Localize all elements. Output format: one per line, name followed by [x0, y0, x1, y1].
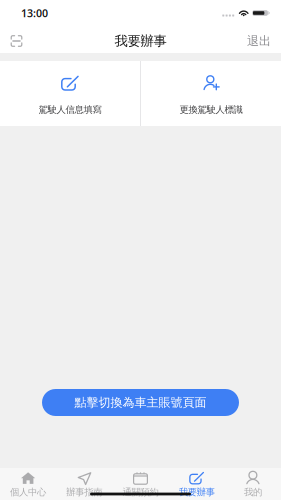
staticText: 更換駕駛人標識	[179, 104, 242, 115]
button[interactable]: 我的	[225, 468, 281, 498]
button[interactable]: 辦事指南	[56, 468, 112, 498]
staticText: 駕駛人信息填寫	[38, 104, 101, 115]
staticText: 辦事指南	[66, 486, 102, 498]
staticText: 我要辦事	[179, 486, 215, 498]
button[interactable]: 點擊切換為車主賬號頁面	[42, 389, 239, 416]
staticText: 13:00	[21, 6, 48, 20]
staticText: 我要辦事	[114, 33, 166, 49]
button[interactable]: 我要辦事	[169, 468, 225, 498]
button[interactable]: 通關預約	[112, 468, 169, 498]
button[interactable]: 退出	[247, 29, 281, 53]
staticText: 通關預約	[122, 486, 158, 498]
staticText: 我的	[244, 486, 262, 498]
button[interactable]: Scan code	[0, 30, 22, 52]
button[interactable]: 更換駕駛人標識	[141, 61, 281, 126]
button[interactable]: 駕駛人信息填寫	[0, 61, 140, 126]
staticText: 個人中心	[10, 486, 46, 498]
staticText: 點擊切換為車主賬號頁面	[74, 395, 206, 410]
button[interactable]: 個人中心	[0, 468, 56, 498]
staticText: 退出	[247, 34, 271, 48]
